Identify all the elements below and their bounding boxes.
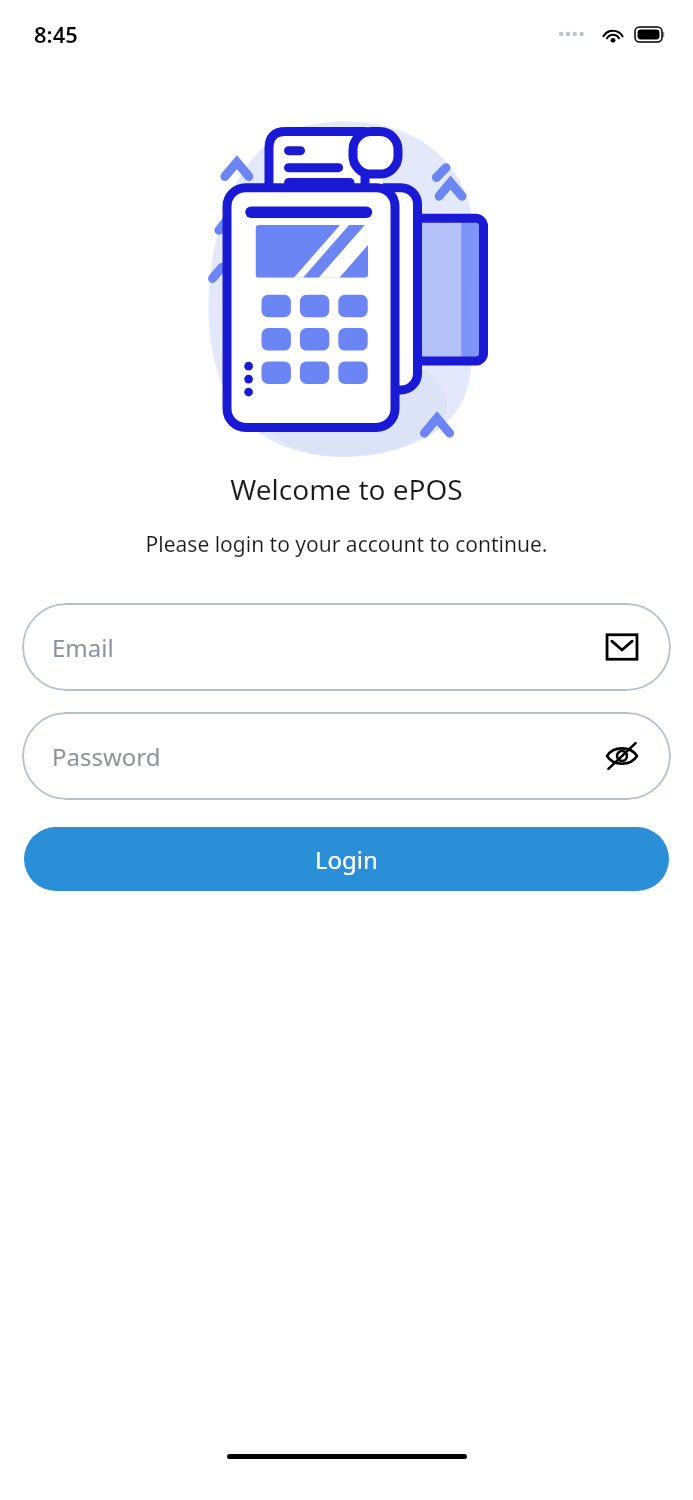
- other: Email: [603, 628, 641, 666]
- staticText: Email: [52, 631, 603, 664]
- other: Show password: [603, 737, 641, 775]
- staticText: Please login to your account to continue…: [0, 530, 693, 559]
- button[interactable]: Email: [22, 603, 671, 691]
- button[interactable]: Login: [24, 827, 669, 891]
- staticText: Login: [315, 843, 378, 876]
- staticText: Welcome to ePOS: [0, 470, 693, 508]
- button[interactable]: Password: [22, 712, 671, 800]
- staticText: 8:45: [34, 19, 78, 49]
- staticText: Password: [52, 740, 603, 773]
